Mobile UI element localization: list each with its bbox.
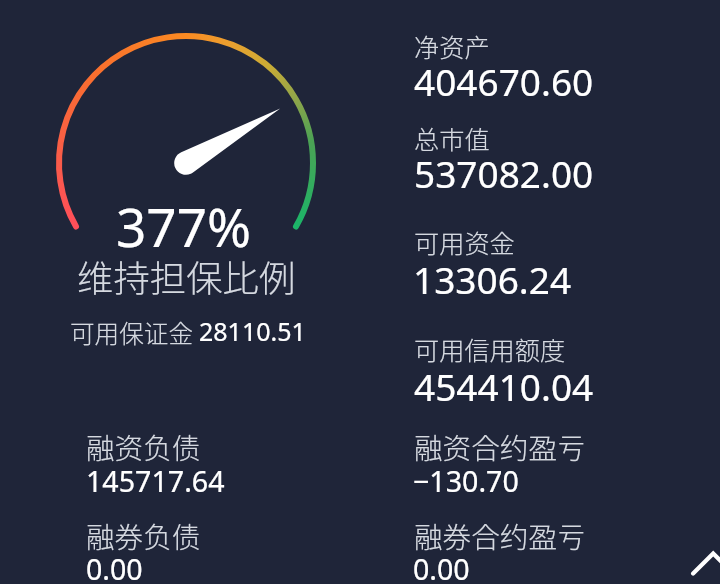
- staticText: 13306.24: [413, 254, 572, 304]
- staticText: 404670.60: [414, 56, 594, 106]
- button[interactable]: Collapse: [676, 536, 720, 584]
- staticText: 537082.00: [414, 148, 594, 198]
- staticText: 可用资金: [414, 224, 515, 260]
- staticText: 融券负债: [86, 515, 201, 556]
- staticText: 0.00: [413, 549, 470, 584]
- staticText: 28110.51: [199, 314, 306, 348]
- staticText: 融资合约盈亏: [414, 426, 586, 467]
- staticText: 0.00: [86, 549, 143, 584]
- staticText: 维持担保比例: [77, 250, 296, 303]
- staticText: 可用信用额度: [414, 331, 566, 367]
- staticText: 融资负债: [86, 426, 201, 467]
- staticText: 454410.04: [414, 361, 594, 411]
- staticText: 总市值: [414, 120, 490, 156]
- staticText: 可用保证金: [70, 314, 193, 350]
- staticText: 净资产: [414, 28, 490, 64]
- staticText: 145717.64: [86, 461, 225, 500]
- staticText: 377%: [116, 190, 251, 262]
- staticText: −130.70: [413, 461, 519, 500]
- staticText: 融券合约盈亏: [414, 515, 586, 556]
